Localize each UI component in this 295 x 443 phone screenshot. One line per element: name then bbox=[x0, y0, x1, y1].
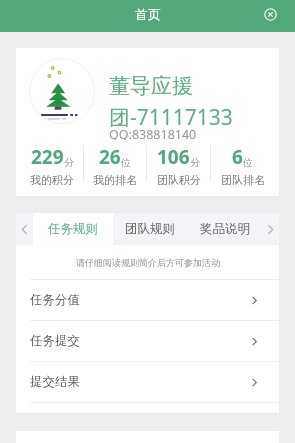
staticText: 团队排名 bbox=[221, 173, 265, 187]
button[interactable]: 任务规则 bbox=[33, 213, 113, 245]
button[interactable]: 任务分值 bbox=[16, 280, 279, 320]
staticText: 分 bbox=[190, 156, 200, 169]
staticText: 6 bbox=[232, 144, 243, 170]
staticText: 首页 bbox=[135, 6, 161, 22]
button[interactable]: 任务提交 bbox=[16, 321, 279, 361]
button[interactable]: 团队规则 bbox=[113, 213, 187, 245]
staticText: 分 bbox=[64, 156, 74, 169]
staticText: 董导应援团-71117133 bbox=[109, 73, 269, 132]
staticText: QQ:838818140 bbox=[109, 126, 197, 143]
staticText: 位 bbox=[243, 156, 253, 169]
staticText: 26 bbox=[99, 144, 121, 170]
staticText: 位 bbox=[121, 156, 131, 169]
staticText: 奖品说明 bbox=[200, 221, 250, 237]
button[interactable]: 奖品说明 bbox=[187, 213, 262, 245]
staticText: 团队规则 bbox=[125, 221, 175, 237]
button[interactable]: Close bbox=[264, 8, 277, 21]
staticText: 提交结果 bbox=[30, 374, 80, 390]
button[interactable]: Next tab bbox=[262, 213, 279, 245]
staticText: 229 bbox=[31, 144, 64, 170]
staticText: 任务分值 bbox=[30, 292, 80, 308]
staticText: 我的排名 bbox=[93, 173, 137, 187]
staticText: 任务规则 bbox=[48, 221, 98, 237]
staticText: 团队积分 bbox=[157, 173, 201, 187]
button[interactable]: 提交结果 bbox=[16, 362, 279, 402]
staticText: 请仔细阅读规则简介后方可参加活动 bbox=[76, 257, 220, 268]
staticText: 106 bbox=[157, 144, 190, 170]
staticText: 我的积分 bbox=[30, 173, 74, 187]
button[interactable]: Previous tab bbox=[16, 213, 33, 245]
staticText: 任务提交 bbox=[30, 333, 80, 349]
